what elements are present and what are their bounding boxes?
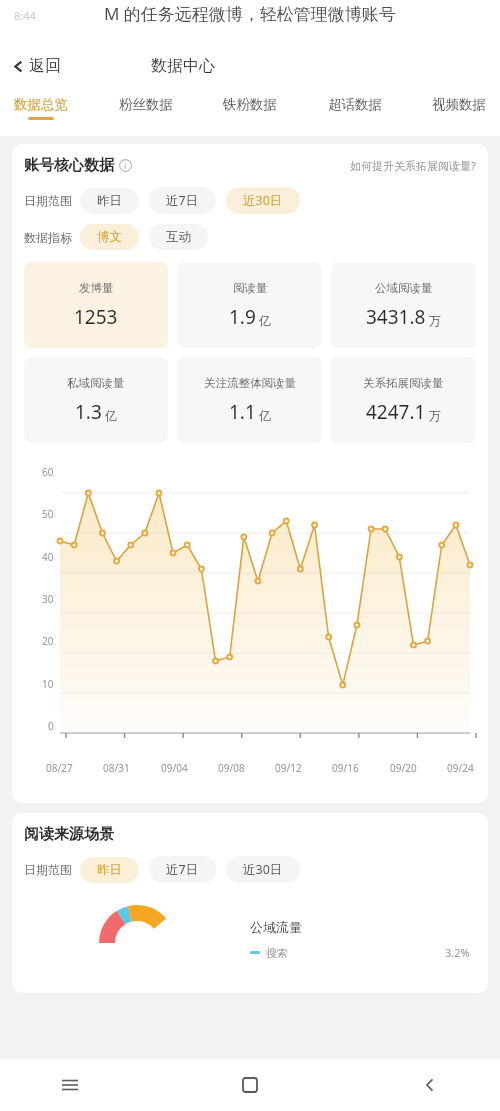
button[interactable]: 返回 <box>0 50 73 82</box>
staticText: i <box>124 160 127 171</box>
staticText: 关系拓展阅读量 <box>363 376 444 390</box>
staticText: 3.2% <box>445 945 470 960</box>
staticText: 视频数据 <box>432 96 486 113</box>
staticText: 10 <box>42 677 54 691</box>
button[interactable]: 铁粉数据 <box>217 90 283 126</box>
staticText: 万 <box>429 313 441 328</box>
staticText: 阅读量 <box>233 281 268 295</box>
staticText: 3431.8 <box>366 304 426 330</box>
button[interactable]: 视频数据 <box>426 90 492 126</box>
button[interactable]: 阅读量 <box>177 262 322 348</box>
staticText: 返回 <box>29 56 61 76</box>
staticText: 公域流量 <box>250 919 302 935</box>
staticText: 09/16 <box>332 761 359 775</box>
staticText: 近30日 <box>243 861 283 878</box>
staticText: 09/12 <box>275 761 302 775</box>
staticText: 粉丝数据 <box>119 96 173 113</box>
staticText: 亿 <box>259 313 271 328</box>
staticText: 1.1 <box>229 399 256 425</box>
staticText: 4247.1 <box>366 399 426 425</box>
staticText: 私域阅读量 <box>67 376 125 390</box>
button[interactable]: 说明 <box>119 159 132 172</box>
staticText: 日期范围 <box>24 862 72 877</box>
staticText: 互动 <box>166 229 191 245</box>
button[interactable]: 互动 <box>149 224 208 250</box>
staticText: 超话数据 <box>328 96 382 113</box>
button[interactable]: 超话数据 <box>322 90 388 126</box>
staticText: 1.9 <box>229 304 256 330</box>
staticText: 万 <box>429 408 441 423</box>
staticText: 09/24 <box>447 761 474 775</box>
staticText: 搜索 <box>266 946 288 960</box>
button[interactable]: 数据总览 <box>8 90 74 126</box>
button[interactable]: 如何提升关系拓展阅读量? <box>350 158 476 173</box>
staticText: 8:44 <box>14 8 36 23</box>
staticText: 亿 <box>105 408 117 423</box>
staticText: 数据指标 <box>24 230 72 245</box>
staticText: 博文 <box>97 229 122 245</box>
button[interactable]: 私域阅读量 <box>24 357 168 443</box>
button[interactable]: 关注流整体阅读量 <box>177 357 322 443</box>
staticText: 昨日 <box>97 862 122 878</box>
staticText: 09/20 <box>390 761 417 775</box>
button[interactable]: 关系拓展阅读量 <box>331 357 476 443</box>
staticText: 阅读来源场景 <box>24 825 114 844</box>
button[interactable]: 博文 <box>80 224 139 250</box>
staticText: 如何提升关系拓展阅读量? <box>350 158 476 173</box>
button[interactable]: 昨日 <box>80 857 139 883</box>
button[interactable]: Menu <box>56 1071 84 1099</box>
staticText: 数据总览 <box>14 96 68 113</box>
button[interactable]: 近7日 <box>149 856 216 883</box>
staticText: 40 <box>42 550 54 564</box>
staticText: 发博量 <box>79 281 114 295</box>
staticText: 关注流整体阅读量 <box>204 376 296 390</box>
staticText: 08/31 <box>103 761 130 775</box>
staticText: 50 <box>42 507 54 521</box>
button[interactable]: 近30日 <box>226 187 300 214</box>
staticText: 铁粉数据 <box>223 96 277 113</box>
staticText: 近30日 <box>243 192 283 209</box>
staticText: 0 <box>48 719 54 733</box>
button[interactable]: 昨日 <box>80 188 139 214</box>
button[interactable]: Home <box>236 1071 264 1099</box>
button[interactable]: Back <box>416 1071 444 1099</box>
staticText: 亿 <box>259 408 271 423</box>
staticText: 60 <box>42 465 54 479</box>
button[interactable]: 公域阅读量 <box>331 262 476 348</box>
button[interactable]: 粉丝数据 <box>113 90 179 126</box>
staticText: 30 <box>42 592 54 606</box>
button[interactable]: 近30日 <box>226 856 300 883</box>
staticText: 09/08 <box>218 761 245 775</box>
staticText: 1253 <box>74 304 118 330</box>
staticText: 1.3 <box>75 399 102 425</box>
staticText: 20 <box>42 634 54 648</box>
staticText: 近7日 <box>166 192 199 209</box>
staticText: 昨日 <box>97 193 122 209</box>
staticText: 08/27 <box>46 761 73 775</box>
button[interactable]: 发博量 <box>24 262 168 348</box>
staticText: 09/04 <box>161 761 188 775</box>
staticText: 账号核心数据 <box>24 156 114 175</box>
staticText: 近7日 <box>166 861 199 878</box>
staticText: 数据中心 <box>151 56 215 76</box>
staticText: 公域阅读量 <box>375 281 433 295</box>
button[interactable]: 近7日 <box>149 187 216 214</box>
staticText: M 的任务远程微博，轻松管理微博账号 <box>104 2 396 25</box>
staticText: 日期范围 <box>24 193 72 208</box>
